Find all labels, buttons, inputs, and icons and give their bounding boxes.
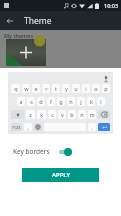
button[interactable]: p (102, 84, 110, 93)
staticText: v (61, 111, 64, 118)
staticText: j (80, 98, 82, 105)
button[interactable]: g (57, 97, 65, 106)
button[interactable]: z (26, 110, 35, 119)
staticText: w (24, 85, 29, 92)
button[interactable]: r (42, 84, 50, 93)
staticText: 10:03 (104, 2, 119, 9)
button[interactable]: ?123 (11, 123, 22, 131)
staticText: My themes (4, 32, 34, 39)
button[interactable]: e (32, 84, 40, 93)
staticText: n (80, 111, 84, 118)
staticText: u (74, 85, 78, 92)
button[interactable]: Add theme (6, 39, 46, 66)
button[interactable]: u (72, 84, 80, 93)
staticText: t (55, 85, 57, 92)
button[interactable]: f (47, 97, 55, 106)
button[interactable]: Enter (98, 123, 110, 131)
staticText: Key borders (13, 147, 50, 156)
staticText: g (59, 98, 63, 105)
button[interactable]: Key borders (0, 144, 121, 158)
button[interactable]: m (88, 110, 96, 119)
staticText: APPLY (52, 171, 70, 179)
button[interactable]: , (24, 123, 32, 131)
button[interactable]: b (68, 110, 76, 119)
staticText: , (27, 124, 29, 131)
button[interactable]: l (97, 97, 105, 106)
staticText: ?123 (12, 125, 21, 130)
button[interactable]: n (78, 110, 86, 119)
button[interactable]: x (37, 110, 46, 119)
staticText: h (69, 98, 73, 105)
button[interactable]: t (52, 84, 60, 93)
button[interactable]: Shift (11, 110, 24, 119)
button[interactable]: s (27, 97, 35, 106)
staticText: s (30, 98, 33, 105)
staticText: m (89, 111, 95, 118)
staticText: l (100, 98, 102, 105)
button[interactable]: Back (0, 11, 19, 30)
staticText: . (91, 124, 93, 131)
staticText: Theme (24, 15, 52, 27)
staticText: i (85, 85, 87, 92)
staticText: f (50, 98, 52, 105)
button[interactable]: q (11, 84, 20, 93)
button[interactable]: i (82, 84, 90, 93)
button[interactable]: Change language (34, 123, 42, 131)
button[interactable]: c (48, 110, 56, 119)
button[interactable]: v (58, 110, 66, 119)
staticText: o (94, 85, 98, 92)
staticText: a (19, 98, 23, 105)
staticText: e (34, 85, 38, 92)
staticText: r (45, 85, 48, 92)
staticText: q (14, 85, 18, 92)
staticText: c (51, 111, 54, 118)
staticText: y (65, 85, 68, 92)
button[interactable]: d (37, 97, 45, 106)
button[interactable]: h (67, 97, 75, 106)
button[interactable]: Backspace (98, 110, 110, 119)
staticText: k (90, 98, 93, 105)
button[interactable]: APPLY (22, 168, 99, 182)
button[interactable]: a (17, 97, 25, 106)
staticText: d (39, 98, 43, 105)
staticText: x (40, 111, 43, 118)
button[interactable]: o (92, 84, 100, 93)
button[interactable]: k (87, 97, 95, 106)
button[interactable]: w (22, 84, 30, 93)
staticText: z (29, 111, 32, 118)
button[interactable]: j (77, 97, 85, 106)
staticText: b (70, 111, 74, 118)
button[interactable]: . (88, 123, 96, 131)
staticText: p (104, 85, 108, 92)
button[interactable]: y (62, 84, 70, 93)
